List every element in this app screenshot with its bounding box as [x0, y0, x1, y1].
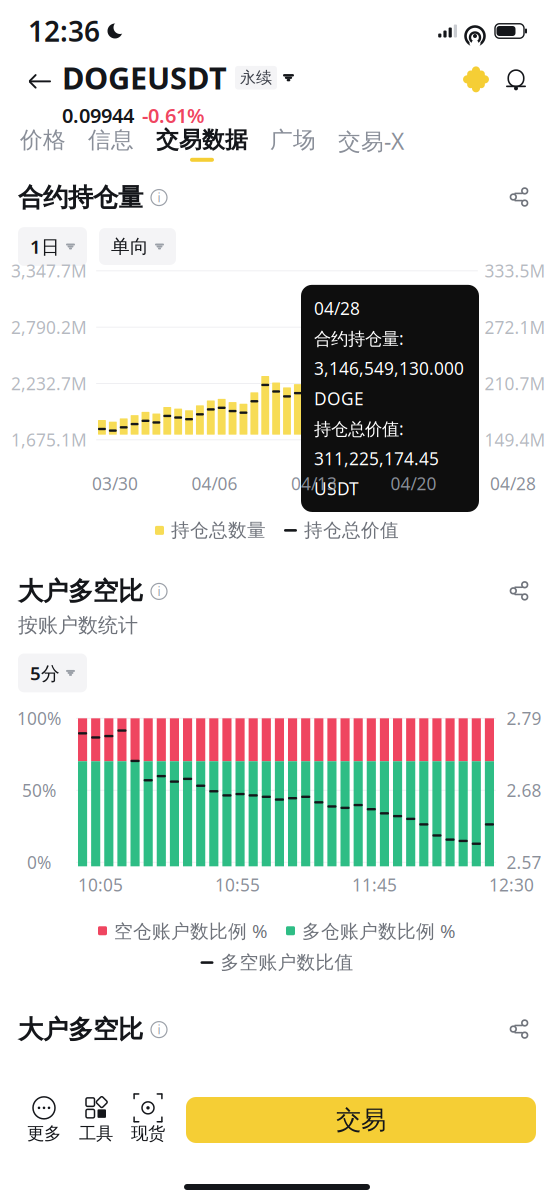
button[interactable]: Alerts [496, 55, 536, 103]
staticText: 50% [22, 779, 56, 802]
staticText: 价格 [20, 126, 66, 154]
staticText: 1日 [30, 234, 60, 259]
button[interactable]: 现货 [122, 1094, 174, 1146]
staticText: 12:30 [489, 873, 534, 896]
staticText: 广场 [270, 126, 316, 154]
button[interactable]: 1日 [18, 227, 87, 266]
staticText: 311,225,174.45 [314, 447, 439, 470]
staticText: 现货 [131, 1123, 165, 1144]
staticText: 大户多空比 [18, 576, 143, 607]
staticText: 210.7M [484, 372, 545, 395]
staticText: 2.57 [506, 851, 541, 874]
button[interactable]: Back [18, 55, 62, 107]
staticText: 按账户数统计 [18, 613, 138, 638]
button[interactable]: 广场 [259, 120, 327, 168]
staticText: i [157, 583, 160, 599]
staticText: 04/28 [314, 297, 360, 320]
staticText: 空仓账户数比例 % [114, 918, 268, 943]
staticText: 交易 [336, 1104, 386, 1135]
staticText: -0.61% [142, 102, 205, 129]
button[interactable]: 交易-X [327, 120, 415, 170]
staticText: 持仓总价值: [314, 417, 404, 440]
button[interactable]: 交易数据 [145, 120, 259, 168]
staticText: 持仓总价值 [304, 519, 399, 542]
staticText: 永续 [240, 68, 272, 88]
button[interactable]: 单向 [99, 228, 176, 265]
staticText: 交易-X [338, 126, 404, 156]
staticText: 10:55 [215, 873, 260, 896]
button[interactable]: Favorite [456, 55, 496, 103]
staticText: 0.09944 [62, 102, 134, 129]
staticText: 04/13 [291, 472, 337, 495]
staticText: 11:45 [352, 873, 397, 896]
staticText: 多仓账户数比例 % [302, 918, 456, 943]
button[interactable]: 5分 [18, 653, 87, 692]
button[interactable]: 更多 [18, 1094, 70, 1146]
staticText: 12:36 [28, 12, 100, 50]
staticText: 100% [17, 707, 61, 730]
staticText: 0% [27, 851, 51, 874]
staticText: 2.79 [506, 707, 541, 730]
button[interactable]: 工具 [70, 1094, 122, 1146]
staticText: 03/30 [92, 472, 138, 495]
staticText: 1,675.1M [11, 428, 87, 451]
staticText: 2,232.7M [11, 372, 87, 395]
button[interactable]: 信息 [77, 120, 145, 168]
staticText: 149.4M [484, 428, 545, 451]
staticText: 持仓总数量 [171, 519, 266, 542]
staticText: 04/28 [490, 472, 536, 495]
staticText: USDT [314, 477, 359, 500]
staticText: 更多 [27, 1123, 61, 1144]
staticText: DOGE [314, 387, 364, 410]
staticText: 2,790.2M [11, 316, 87, 339]
staticText: 单向 [111, 235, 149, 258]
button[interactable]: 永续 [235, 66, 294, 90]
staticText: 04/06 [191, 472, 237, 495]
staticText: 3,146,549,130.000 [314, 357, 464, 380]
staticText: DOGEUSDT [62, 57, 227, 98]
staticText: 333.5M [484, 259, 545, 282]
staticText: 多空账户数比值 [220, 951, 353, 974]
staticText: 5分 [30, 660, 60, 685]
staticText: i [157, 190, 160, 205]
staticText: 04/20 [390, 472, 436, 495]
staticText: 合约持仓量: [314, 327, 404, 350]
staticText: 工具 [79, 1123, 113, 1144]
button[interactable]: Share [502, 1014, 536, 1044]
staticText: 272.1M [484, 316, 545, 339]
staticText: 大户多空比 [18, 1014, 143, 1045]
staticText: 合约持仓量 [18, 182, 143, 213]
button[interactable]: 交易 [186, 1097, 536, 1143]
staticText: 3,347.7M [11, 259, 87, 282]
staticText: 10:05 [78, 873, 123, 896]
staticText: 交易数据 [156, 126, 248, 154]
staticText: i [157, 1022, 160, 1038]
button[interactable]: Share [502, 576, 536, 606]
staticText: 2.68 [506, 779, 541, 802]
staticText: 信息 [88, 126, 134, 154]
button[interactable]: Share [502, 182, 536, 212]
button[interactable]: 价格 [9, 120, 77, 168]
